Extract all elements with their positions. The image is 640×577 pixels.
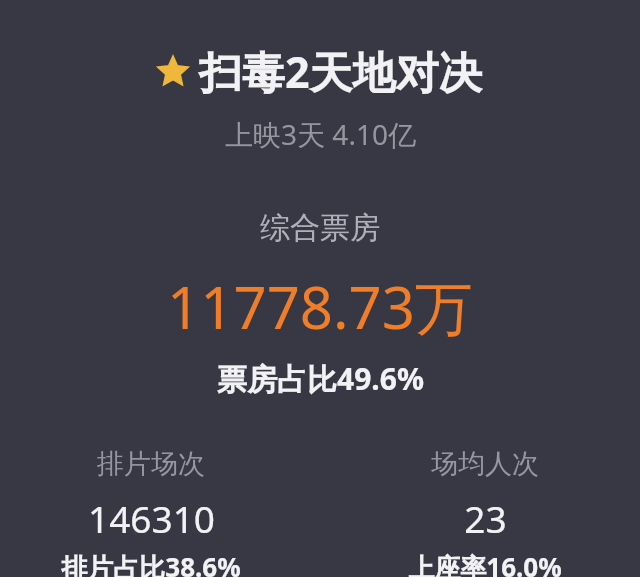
staticText: 综合票房 [260,209,380,247]
staticText: 票房占比49.6% [217,358,424,399]
button[interactable]: 场均人次 [408,447,562,577]
staticText: 上座率16.0% [408,549,562,577]
staticText: 上映3天 4.10亿 [225,115,416,153]
staticText: 排片场次 [97,447,205,481]
staticText: 146310 [88,493,215,543]
staticText: 场均人次 [431,447,539,481]
staticText: 11778.73万 [167,267,473,346]
button[interactable]: Favorite [155,42,486,101]
staticText: 扫毒2天地对决 [199,42,482,101]
staticText: 排片占比38.6% [61,549,241,577]
button[interactable]: 排片场次 [61,447,241,577]
other: Favorite [159,58,187,86]
staticText: 23 [464,493,507,543]
